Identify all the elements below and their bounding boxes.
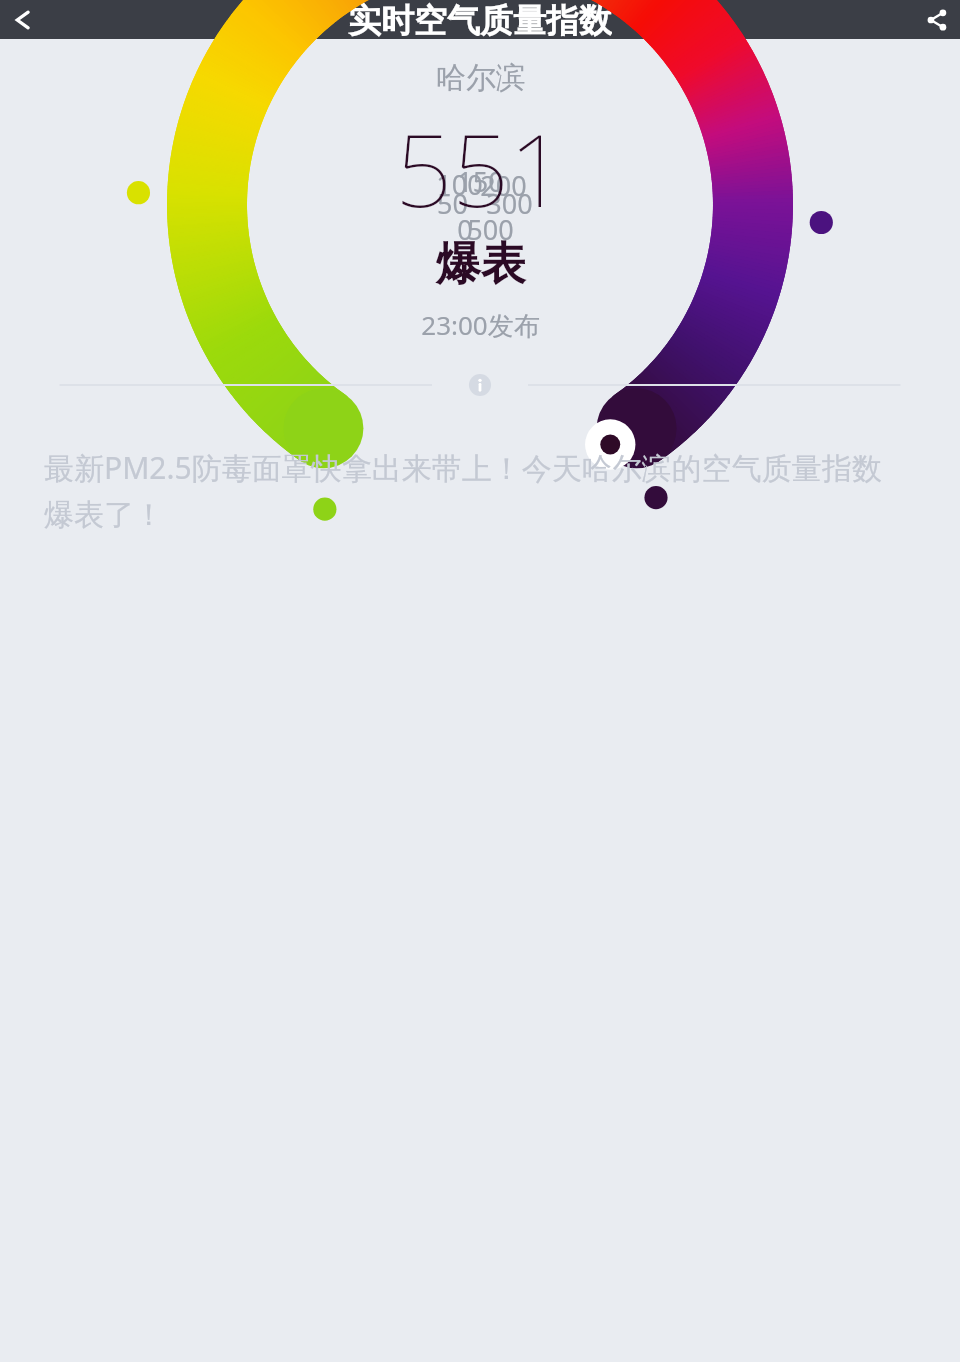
staticText: 100	[436, 166, 483, 203]
button[interactable]: Info	[464, 369, 496, 401]
staticText: 50	[437, 185, 468, 222]
staticText: 23:00发布	[421, 307, 540, 343]
staticText: 0	[457, 211, 473, 248]
staticText: 最新PM2.5防毒面罩快拿出来带上！今天哈尔滨的空气质量指数爆表了！	[44, 447, 904, 534]
staticText: 200	[480, 167, 527, 204]
staticText: 300	[486, 185, 533, 222]
staticText: 551	[395, 100, 566, 236]
staticText: 150	[457, 163, 504, 200]
button[interactable]: Share	[921, 4, 953, 36]
button[interactable]: Back	[4, 3, 38, 37]
staticText: 实时空气质量指数	[348, 0, 612, 39]
staticText: 哈尔滨	[436, 59, 526, 97]
staticText: 500	[467, 211, 514, 248]
staticText: 爆表	[436, 236, 526, 293]
